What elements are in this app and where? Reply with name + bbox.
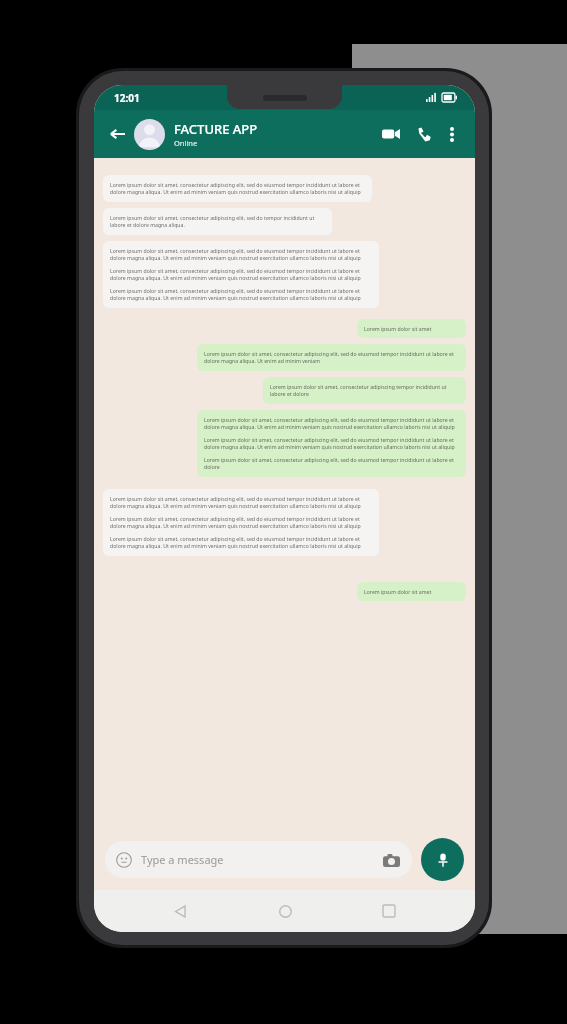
button[interactable]: Home [266, 892, 304, 930]
button[interactable]: FACTURE APP [174, 120, 377, 148]
staticText: Type a message [141, 852, 381, 867]
button[interactable]: Lorem ipsum dolor sit amet [357, 582, 466, 601]
button[interactable]: Lorem ipsum dolor sit amet, consectetur … [197, 344, 466, 371]
staticText: Lorem ipsum dolor sit amet, consectetur … [204, 416, 459, 431]
staticText: Lorem ipsum dolor sit amet, consectetur … [110, 287, 372, 302]
staticText: Lorem ipsum dolor sit amet [364, 325, 432, 332]
button[interactable]: Lorem ipsum dolor sit amet, consectetur … [103, 208, 332, 235]
button[interactable]: Record voice message [421, 838, 464, 881]
staticText: FACTURE APP [174, 120, 258, 138]
button[interactable]: Back [161, 892, 199, 930]
button[interactable]: Camera [381, 850, 401, 870]
staticText: Lorem ipsum dolor sit amet, consectetur … [110, 247, 372, 262]
button[interactable]: Recents [370, 892, 408, 930]
button[interactable]: Contact avatar [134, 119, 165, 150]
button[interactable]: Type a message [105, 841, 412, 878]
button[interactable]: Video call [377, 120, 405, 148]
staticText: Lorem ipsum dolor sit amet, consectetur … [110, 214, 325, 229]
button[interactable]: Back [105, 122, 129, 146]
button[interactable]: Lorem ipsum dolor sit amet, consectetur … [103, 175, 372, 202]
staticText: Lorem ipsum dolor sit amet, consectetur … [204, 436, 459, 451]
button[interactable]: Lorem ipsum dolor sit amet, consectetur … [263, 377, 466, 404]
staticText: Lorem ipsum dolor sit amet [364, 588, 432, 595]
button[interactable]: More options [440, 122, 464, 146]
staticText: Online [174, 138, 198, 148]
staticText: Lorem ipsum dolor sit amet, consectetur … [204, 350, 459, 365]
button[interactable]: Lorem ipsum dolor sit amet, consectetur … [103, 489, 379, 556]
staticText: Lorem ipsum dolor sit amet, consectetur … [110, 535, 372, 550]
staticText: Lorem ipsum dolor sit amet, consectetur … [204, 456, 459, 471]
staticText: Lorem ipsum dolor sit amet, consectetur … [110, 267, 372, 282]
staticText: Lorem ipsum dolor sit amet, consectetur … [270, 383, 459, 398]
staticText: Lorem ipsum dolor sit amet, consectetur … [110, 515, 372, 530]
staticText: Lorem ipsum dolor sit amet, consectetur … [110, 181, 365, 196]
button[interactable]: Lorem ipsum dolor sit amet, consectetur … [103, 241, 379, 308]
staticText: Lorem ipsum dolor sit amet, consectetur … [110, 495, 372, 510]
button[interactable]: Lorem ipsum dolor sit amet [357, 319, 466, 338]
button[interactable]: Lorem ipsum dolor sit amet, consectetur … [197, 410, 466, 477]
button[interactable]: Call [409, 120, 437, 148]
staticText: 12:01 [114, 91, 140, 105]
